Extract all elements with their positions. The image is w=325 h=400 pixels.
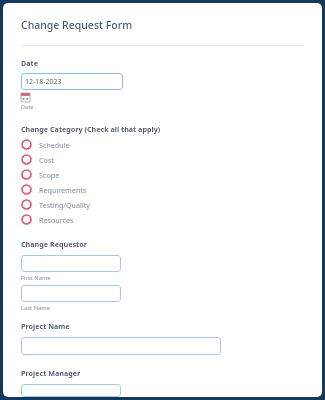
button[interactable]: Requirements [21,182,322,197]
button[interactable]: Testing/Quality [21,197,322,212]
staticText: Scope [39,170,60,180]
staticText: Change Requestor [21,239,87,249]
staticText: Date [21,58,38,68]
staticText: Project Name [21,321,70,331]
button[interactable]: Resources [21,212,322,227]
button[interactable] [21,285,121,302]
staticText: Testing/Quality [39,200,91,210]
button[interactable]: Cost [21,152,322,167]
button[interactable]: Schedule [21,137,322,152]
button[interactable]: 12-18-2023 [21,73,123,90]
staticText: Change Request Form [21,18,133,32]
button[interactable]: Scope [21,167,322,182]
button[interactable]: Date picker [21,93,30,102]
staticText: Change Category (Check all that apply) [21,124,161,134]
staticText: Resources [39,215,74,225]
staticText: First Name [21,274,51,282]
button[interactable] [21,255,121,272]
staticText: Last Name [21,304,51,312]
staticText: 12-18-2023 [25,77,62,87]
staticText: Date [21,103,34,111]
staticText: Schedule [39,140,70,150]
staticText: Cost [39,155,54,165]
button[interactable] [21,337,221,355]
staticText: Project Manager [21,368,81,378]
staticText: Requirements [39,185,87,195]
button[interactable] [21,384,121,397]
